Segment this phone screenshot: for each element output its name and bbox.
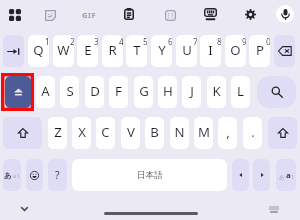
button[interactable]: Emoji — [26, 159, 43, 191]
staticText: H — [163, 82, 173, 100]
staticText: a — [13, 172, 17, 180]
button[interactable]: Y — [151, 35, 172, 67]
button[interactable]: Shift — [268, 117, 297, 149]
staticText: N — [174, 123, 185, 141]
staticText: Q — [33, 41, 44, 59]
staticText: 8 — [217, 36, 221, 47]
button[interactable]: Settings — [241, 5, 259, 23]
staticText: I — [208, 41, 213, 59]
staticText: X — [78, 123, 86, 141]
button[interactable]: D — [85, 76, 104, 108]
button[interactable]: Switch apps — [6, 6, 23, 23]
button[interactable]: Clipboard — [120, 5, 138, 23]
staticText: 1 — [45, 36, 49, 47]
button[interactable]: U — [176, 35, 197, 67]
button[interactable]: S — [60, 76, 79, 108]
staticText: あ — [4, 171, 12, 180]
button[interactable]: H — [158, 76, 177, 108]
button[interactable]: Switch input mode — [3, 159, 21, 191]
staticText: L — [237, 82, 244, 100]
button[interactable]: I — [200, 35, 221, 67]
staticText: M — [198, 123, 210, 141]
staticText: GIF — [82, 10, 97, 20]
staticText: 0 — [266, 36, 270, 47]
staticText: G — [139, 82, 149, 100]
staticText: R — [108, 41, 117, 59]
staticText: 1 — [291, 173, 295, 181]
staticText: U — [182, 41, 192, 59]
button[interactable]: Move cursor right — [253, 159, 270, 191]
staticText: 9 — [242, 36, 246, 47]
staticText: O — [230, 41, 241, 59]
button[interactable]: M — [194, 117, 213, 149]
button[interactable]: Hide keyboard — [14, 201, 34, 217]
staticText: P — [256, 41, 264, 59]
staticText: 1 — [17, 172, 21, 180]
button[interactable]: Shift — [3, 117, 42, 149]
staticText: 3 — [94, 36, 98, 47]
button[interactable]: B — [145, 117, 164, 149]
button[interactable]: . — [243, 117, 262, 149]
staticText: 4 — [119, 36, 123, 47]
staticText: E — [84, 41, 92, 59]
button[interactable]: N — [170, 117, 189, 149]
button[interactable]: 日本語 — [72, 159, 227, 191]
button[interactable]: W — [53, 35, 74, 67]
staticText: 5 — [143, 36, 147, 47]
staticText: J — [190, 82, 194, 100]
staticText: T — [133, 41, 141, 59]
staticText: K — [212, 82, 221, 100]
staticText: あ — [279, 174, 285, 181]
staticText: F — [115, 82, 122, 100]
staticText: D — [90, 82, 100, 100]
staticText: , — [226, 123, 230, 141]
staticText: B — [150, 123, 159, 141]
staticText: . — [251, 123, 255, 141]
staticText: S — [66, 82, 74, 100]
button[interactable]: Caps lock — [5, 76, 31, 108]
button[interactable]: Symbols — [48, 159, 67, 191]
button[interactable]: F — [109, 76, 128, 108]
button[interactable]: Q — [28, 35, 49, 67]
button[interactable]: G — [134, 76, 153, 108]
button[interactable]: Keyboard mode — [201, 5, 219, 23]
button[interactable]: X — [72, 117, 91, 149]
button[interactable]: C — [96, 117, 115, 149]
button[interactable]: T — [126, 35, 147, 67]
button[interactable]: Tab — [3, 35, 24, 67]
button[interactable]: , — [218, 117, 237, 149]
button[interactable]: Move cursor left — [232, 159, 249, 191]
button[interactable]: V — [121, 117, 140, 149]
staticText: ? — [55, 168, 60, 182]
staticText: 6 — [168, 36, 172, 47]
button[interactable]: Switch to alphabet — [276, 159, 296, 191]
staticText: Z — [54, 123, 62, 141]
button[interactable]: Stickers — [41, 6, 59, 24]
staticText: W — [57, 41, 70, 59]
button[interactable]: Z — [48, 117, 67, 149]
button[interactable]: A — [36, 76, 55, 108]
button[interactable]: Backspace — [274, 35, 295, 67]
staticText: 日本語 — [137, 170, 163, 181]
button[interactable]: R — [102, 35, 123, 67]
button[interactable]: GIF — [80, 6, 98, 24]
button[interactable]: Search — [257, 76, 296, 108]
staticText: 7 — [193, 36, 197, 47]
button[interactable]: Text editing — [161, 6, 179, 24]
button[interactable]: E — [77, 35, 98, 67]
staticText: a — [286, 170, 291, 181]
button[interactable]: O — [225, 35, 246, 67]
button[interactable]: L — [231, 76, 250, 108]
button[interactable]: P — [249, 35, 270, 67]
staticText: Y — [158, 41, 166, 59]
staticText: V — [127, 123, 135, 141]
button[interactable]: Change keyboard — [264, 201, 284, 217]
button[interactable]: K — [207, 76, 226, 108]
staticText: C — [101, 123, 110, 141]
button[interactable]: J — [182, 76, 201, 108]
staticText: A — [41, 82, 50, 100]
staticText: 2 — [70, 36, 74, 47]
button[interactable]: Voice input — [276, 5, 294, 23]
